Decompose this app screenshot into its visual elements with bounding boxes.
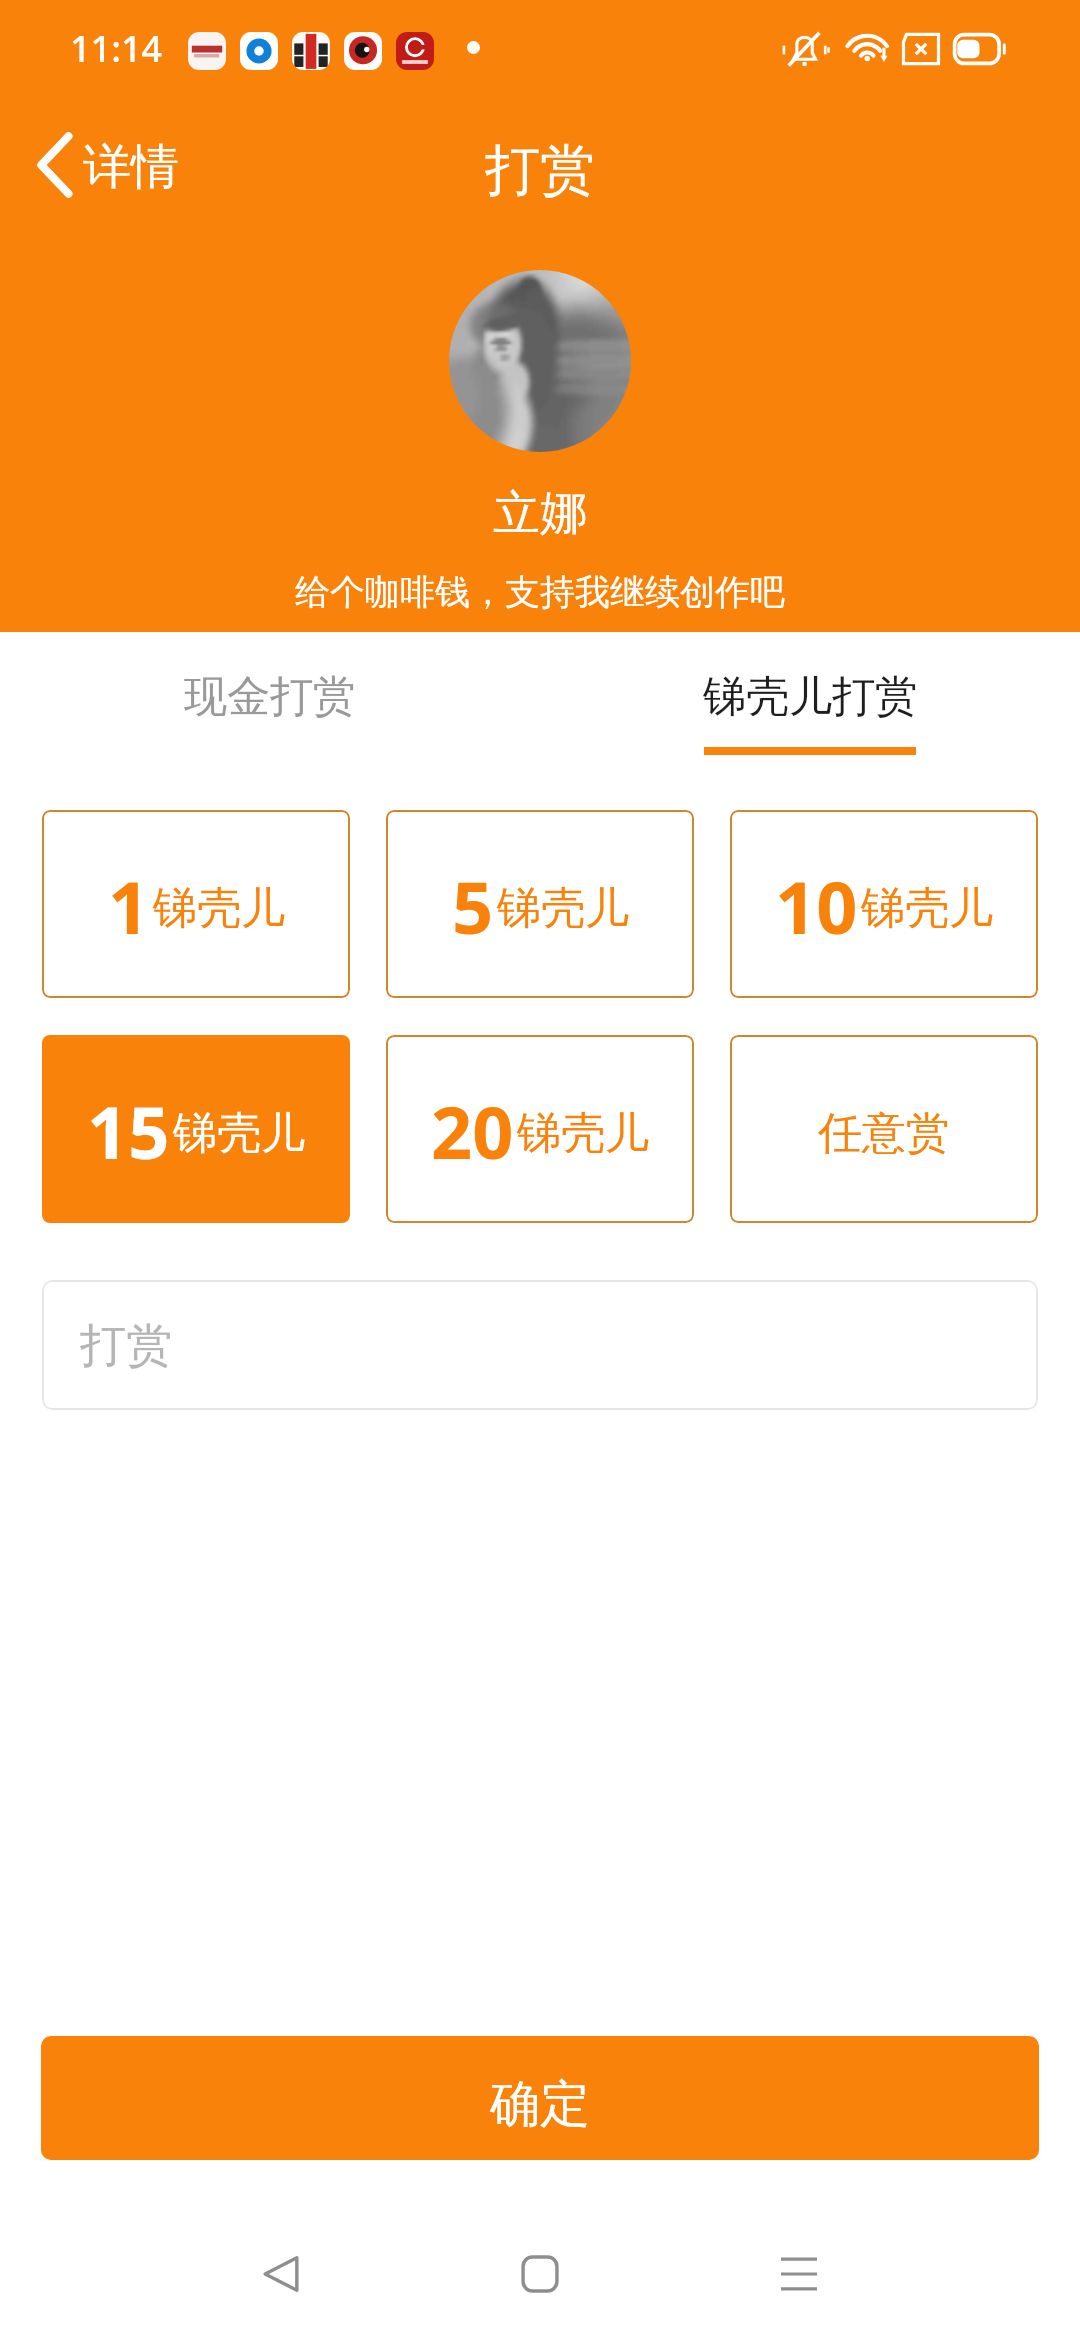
button[interactable]: Home (480, 2220, 600, 2328)
staticText: 5 (452, 857, 494, 955)
staticText: 锑壳儿打赏 (703, 670, 918, 724)
staticText: 打赏 (485, 136, 595, 205)
button[interactable]: 10 (730, 810, 1038, 998)
staticText: 详情 (83, 137, 179, 197)
button[interactable]: 15 (42, 1035, 350, 1223)
staticText: 确定 (490, 2073, 590, 2136)
button[interactable]: Recents (739, 2220, 859, 2328)
staticText: 1 (108, 857, 150, 955)
button[interactable]: 5 (386, 810, 694, 998)
staticText: 锑壳儿 (173, 1106, 305, 1161)
staticText: 立娜 (493, 484, 587, 543)
button[interactable]: 确定 (41, 2036, 1039, 2160)
staticText: 锑壳儿 (517, 1106, 649, 1161)
button[interactable]: 1 (42, 810, 350, 998)
button[interactable]: 锑壳儿打赏 (540, 632, 1080, 762)
button[interactable]: 详情 (0, 117, 205, 213)
staticText: 15 (87, 1082, 170, 1180)
button[interactable]: Back (221, 2220, 341, 2328)
button[interactable]: 任意赏 (730, 1035, 1038, 1223)
staticText: 锑壳儿 (497, 881, 629, 936)
staticText: 任意赏 (818, 1106, 950, 1161)
staticText: 锑壳儿 (861, 881, 993, 936)
staticText: 锑壳儿 (153, 881, 285, 936)
button[interactable]: 打赏 (42, 1280, 1038, 1410)
button[interactable]: 20 (386, 1035, 694, 1223)
staticText: 10 (775, 857, 858, 955)
button[interactable]: 现金打赏 (0, 632, 540, 762)
staticText: 11:14 (70, 24, 163, 73)
staticText: 给个咖啡钱，支持我继续创作吧 (295, 570, 785, 614)
staticText: 20 (431, 1082, 514, 1180)
staticText: 打赏 (80, 1317, 172, 1375)
staticText: 现金打赏 (184, 670, 356, 724)
